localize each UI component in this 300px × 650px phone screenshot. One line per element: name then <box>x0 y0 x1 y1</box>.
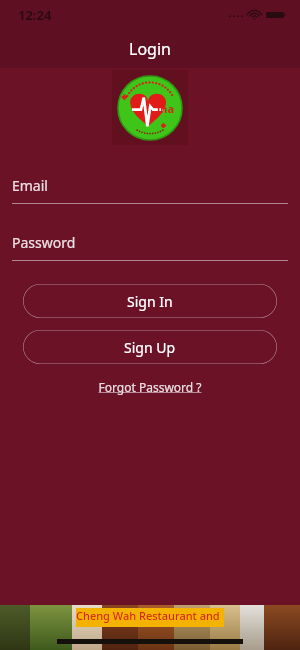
staticText: Password <box>12 233 76 252</box>
staticText: Login <box>129 38 171 60</box>
button[interactable]: Email <box>12 176 288 204</box>
staticText: Forgot Password ? <box>98 379 202 395</box>
staticText: Sign In <box>127 292 173 311</box>
button[interactable]: Advertisement <box>0 605 300 650</box>
staticText: 12:24 <box>18 6 52 24</box>
staticText: Sign Up <box>124 338 176 357</box>
staticText: Email <box>12 176 48 195</box>
button[interactable]: Sign In <box>23 284 277 318</box>
button[interactable]: Forgot Password ? <box>90 377 210 397</box>
button[interactable]: Sign Up <box>23 330 277 364</box>
staticText: Cheng Wah Restaurant and Bar <box>76 608 224 627</box>
staticText: iha <box>157 101 175 116</box>
button[interactable]: Password <box>12 233 288 261</box>
